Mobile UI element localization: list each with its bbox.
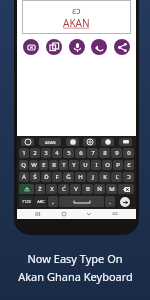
button[interactable]: E [39, 160, 48, 170]
button[interactable]: Undo [91, 39, 107, 55]
staticText: M [109, 185, 115, 193]
staticText: F [55, 173, 59, 181]
button[interactable]: Ż [35, 184, 45, 194]
button[interactable]: M [106, 184, 117, 194]
staticText: , [52, 198, 54, 206]
button[interactable]: 2 [30, 148, 40, 158]
button[interactable]: 9 [111, 148, 122, 158]
button[interactable]: Recents [33, 209, 43, 219]
staticText: Q [21, 161, 26, 169]
button[interactable]: Theme [83, 138, 96, 146]
button[interactable]: Ľ [111, 172, 122, 182]
button[interactable]: J [87, 172, 98, 182]
button[interactable]: 4 [52, 148, 62, 158]
staticText: Ć [62, 185, 66, 193]
staticText: 8 [103, 149, 107, 157]
button[interactable]: . [105, 196, 115, 207]
button[interactable]: Stickers [66, 138, 79, 146]
button[interactable]: Settings [101, 138, 114, 146]
button[interactable]: Clipboard [119, 138, 132, 146]
button[interactable]: B [82, 184, 93, 194]
staticText: R [52, 161, 56, 169]
button[interactable]: Emoji keyboard [21, 138, 34, 146]
button[interactable]: R [49, 160, 58, 170]
button[interactable]: Ś [30, 172, 40, 182]
staticText: ?123 [22, 199, 31, 204]
button[interactable]: F [52, 172, 62, 182]
button[interactable]: Share [114, 39, 130, 55]
button[interactable]: Y [69, 160, 79, 170]
button[interactable]: Copy [46, 39, 62, 55]
button[interactable]: Ń [94, 184, 105, 194]
button[interactable]: Space [59, 196, 104, 207]
button[interactable]: P [113, 160, 123, 170]
staticText: X [50, 185, 54, 193]
button[interactable]: 5 [63, 148, 74, 158]
staticText: J [92, 173, 94, 181]
button[interactable]: 8 [99, 148, 110, 158]
button[interactable]: 3 [41, 148, 51, 158]
button[interactable]: I [91, 160, 101, 170]
button[interactable]: , [48, 196, 58, 207]
staticText: V [74, 185, 78, 193]
button[interactable]: Ĝ [63, 172, 74, 182]
staticText: 7 [91, 149, 95, 157]
button[interactable]: 0 [123, 148, 134, 158]
button[interactable]: Á [19, 172, 29, 182]
staticText: ABC [37, 199, 45, 204]
button[interactable]: O [102, 160, 112, 170]
staticText: U [83, 161, 88, 169]
staticText: . [109, 198, 111, 206]
button[interactable]: 6 [75, 148, 86, 158]
staticText: E [42, 161, 46, 169]
button[interactable]: Enter [116, 196, 134, 207]
staticText: P [116, 161, 120, 169]
button[interactable]: W [29, 160, 38, 170]
staticText: H [78, 173, 83, 181]
button[interactable]: AKAN [39, 138, 61, 146]
staticText: Ď [44, 173, 49, 181]
staticText: Ɔ [127, 173, 131, 181]
button[interactable]: X [46, 184, 57, 194]
button[interactable]: Voice input [69, 39, 85, 55]
staticText: Y [72, 161, 76, 169]
button[interactable]: K [99, 172, 110, 182]
button[interactable]: Clear text [23, 39, 39, 55]
button[interactable]: Hide keyboard [110, 209, 120, 219]
button[interactable]: 7 [87, 148, 98, 158]
staticText: Ż [38, 185, 42, 193]
button[interactable]: ABC [34, 196, 47, 207]
staticText: ɛɔ [72, 4, 81, 16]
staticText: Akan Ghana Keyboard [18, 269, 133, 284]
staticText: Á [22, 173, 26, 181]
button[interactable]: U [80, 160, 90, 170]
staticText: 0 [127, 149, 131, 157]
button[interactable]: Ɔ [123, 172, 134, 182]
staticText: Ś [33, 173, 37, 181]
staticText: AKAN [63, 16, 90, 30]
staticText: AKAN [45, 140, 56, 145]
staticText: 4 [55, 149, 59, 157]
button[interactable]: Shift [19, 184, 34, 194]
staticText: 3 [44, 149, 48, 157]
button[interactable]: Q [19, 160, 28, 170]
button[interactable]: ɛɔ [22, 0, 131, 34]
staticText: 2 [33, 149, 37, 157]
button[interactable]: Ɛ [124, 160, 134, 170]
button[interactable]: Backspace [118, 184, 134, 194]
staticText: Ɛ [127, 161, 131, 169]
staticText: 9 [115, 149, 119, 157]
button[interactable]: T [59, 160, 68, 170]
button[interactable]: Back [84, 209, 94, 219]
button[interactable]: V [70, 184, 81, 194]
button[interactable]: 1 [19, 148, 29, 158]
button[interactable]: Home [59, 209, 69, 219]
button[interactable]: H [75, 172, 86, 182]
staticText: O [105, 161, 110, 169]
staticText: 5 [67, 149, 71, 157]
staticText: I [95, 161, 98, 169]
button[interactable]: Ć [58, 184, 69, 194]
staticText: T [62, 161, 66, 169]
button[interactable]: Ď [41, 172, 51, 182]
button[interactable]: ?123 [19, 196, 33, 207]
